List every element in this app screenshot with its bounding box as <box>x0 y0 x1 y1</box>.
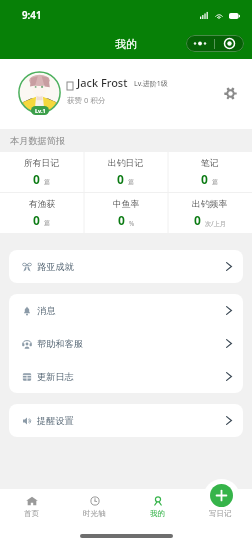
button[interactable]: 帮助和客服 <box>9 327 243 360</box>
staticText: 0 <box>117 171 124 187</box>
button[interactable]: 消息 <box>9 294 243 327</box>
staticText: 我的 <box>150 509 165 518</box>
staticText: 笔记 <box>201 158 219 169</box>
staticText: 出钓日记 <box>108 158 144 169</box>
staticText: 帮助和客服 <box>37 338 83 350</box>
button[interactable]: 时光轴 <box>63 496 126 530</box>
button[interactable]: 提醒设置 <box>9 404 243 437</box>
button[interactable]: 有渔获 <box>0 193 84 233</box>
staticText: 更新日志 <box>37 371 74 383</box>
staticText: 0 <box>201 171 208 187</box>
button[interactable]: 中鱼率 <box>84 193 168 233</box>
button[interactable]: 更新日志 <box>9 360 243 393</box>
staticText: % <box>129 219 135 227</box>
staticText: 时光轴 <box>83 509 106 518</box>
staticText: 次/上月 <box>205 219 226 227</box>
button[interactable]: 写日记 <box>210 484 233 507</box>
button[interactable]: 设置 <box>218 81 242 105</box>
staticText: 我的 <box>115 37 137 51</box>
staticText: 中鱼率 <box>113 199 140 210</box>
staticText: 0 <box>194 212 201 228</box>
staticText: Lv.1 <box>35 107 46 114</box>
staticText: 出钓频率 <box>192 199 228 210</box>
staticText: 篇 <box>212 178 219 186</box>
button[interactable]: Lv.1 <box>18 71 61 114</box>
button[interactable]: 出钓日记 <box>84 152 168 193</box>
staticText: 0 <box>33 212 40 228</box>
staticText: 本月数据简报 <box>10 135 66 147</box>
staticText: 路亚成就 <box>37 261 74 273</box>
staticText: Lv.进阶1级 <box>134 79 168 89</box>
staticText: 9:41 <box>22 9 42 22</box>
staticText: Jack Frost <box>77 75 128 90</box>
button[interactable]: 笔记 <box>168 152 252 193</box>
button[interactable]: 出钓频率 <box>168 193 252 233</box>
staticText: 提醒设置 <box>37 415 74 427</box>
staticText: 0 <box>33 171 40 187</box>
button[interactable]: 路亚成就 <box>9 250 243 283</box>
button[interactable]: 写日记 <box>189 496 252 530</box>
button[interactable]: 我的 <box>126 496 189 530</box>
staticText: 消息 <box>37 305 56 317</box>
staticText: 篇 <box>128 178 135 186</box>
staticText: 篇 <box>44 219 51 227</box>
staticText: 篇 <box>44 178 51 186</box>
button[interactable]: 菜单 <box>186 35 244 52</box>
staticText: 0 <box>118 212 125 228</box>
button[interactable]: 所有日记 <box>0 152 84 193</box>
button[interactable]: 首页 <box>0 496 63 530</box>
staticText: 所有日记 <box>24 158 60 169</box>
staticText: 首页 <box>24 509 39 518</box>
staticText: 有渔获 <box>29 199 56 210</box>
staticText: 获赞 0 积分 <box>67 95 106 105</box>
staticText: 写日记 <box>209 509 232 518</box>
